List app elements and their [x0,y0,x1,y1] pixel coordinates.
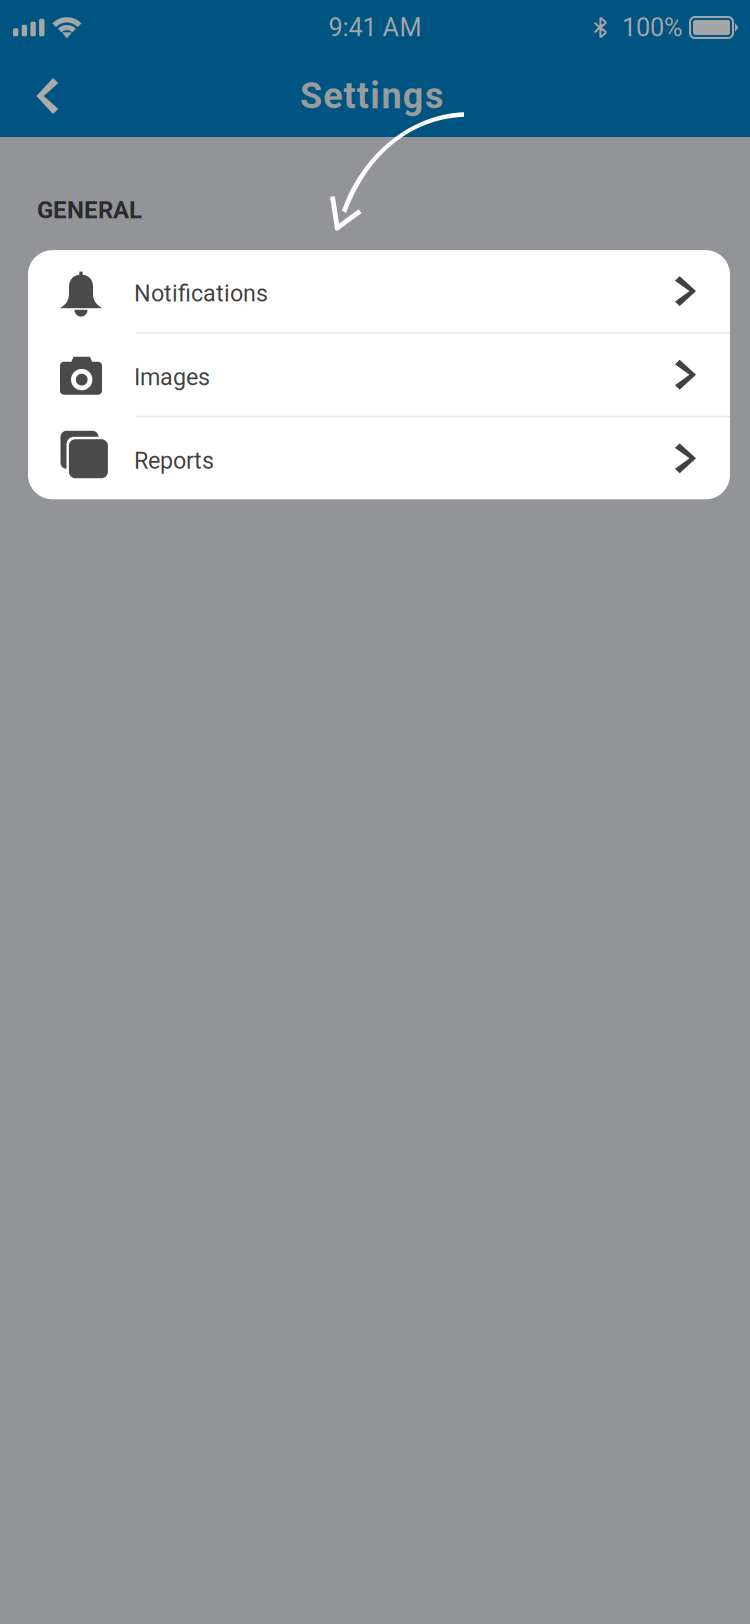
button[interactable]: Back [11,58,58,134]
button[interactable]: Notifications [28,250,730,334]
staticText: Notifications [134,280,268,307]
button[interactable]: Images [28,334,730,417]
staticText: Settings [300,75,443,117]
staticText: Images [134,364,210,391]
staticText: 100% [622,13,683,42]
button[interactable]: Reports [28,417,730,499]
staticText: 9:41 AM [328,13,421,42]
staticText: Reports [134,447,214,474]
staticText: GENERAL [37,196,142,224]
